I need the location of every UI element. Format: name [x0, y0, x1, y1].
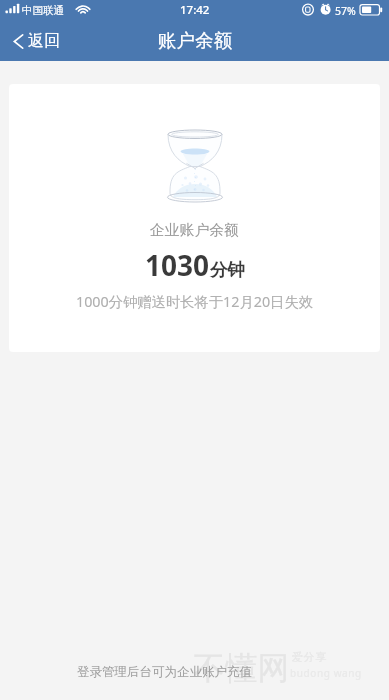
staticText: budong wang — [290, 666, 362, 680]
staticText: 57% — [335, 4, 356, 18]
button[interactable]: 返回 — [8, 26, 65, 56]
staticText: 爱分享 — [291, 650, 327, 664]
staticText: 1030 — [145, 246, 210, 284]
staticText: 登录管理后台可为企业账户充值 — [77, 664, 252, 680]
staticText: 中国联通 — [22, 4, 64, 17]
staticText: 返回 — [28, 31, 60, 51]
staticText: 1000分钟赠送时长将于12月20日失效 — [76, 292, 313, 312]
staticText: 分钟 — [210, 259, 245, 281]
staticText: 账户余额 — [158, 29, 232, 52]
staticText: 企业账户余额 — [150, 221, 239, 240]
staticText: 17:42 — [180, 2, 210, 18]
staticText: 不懂网 — [193, 648, 290, 688]
